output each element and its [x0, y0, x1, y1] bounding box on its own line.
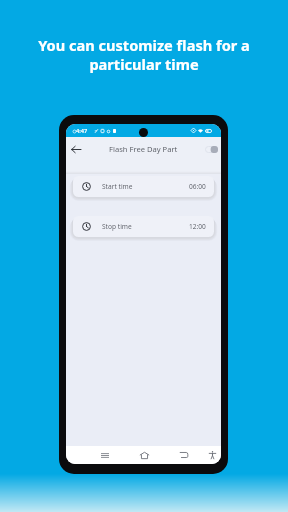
button[interactable]: Stop time: [73, 216, 214, 237]
button[interactable]: Back: [177, 448, 191, 462]
staticText: You can customize flash for a particular…: [18, 35, 270, 74]
staticText: Stop time: [102, 222, 132, 231]
staticText: Flash Free Day Part: [109, 144, 178, 154]
staticText: Start time: [102, 182, 133, 191]
staticText: 4:47: [76, 127, 88, 135]
button[interactable]: Toggle flash schedule: [200, 143, 218, 155]
button[interactable]: Start time: [73, 176, 214, 197]
staticText: 12:00: [189, 222, 206, 231]
button[interactable]: Recent apps: [98, 448, 112, 462]
staticText: 06:00: [189, 182, 206, 191]
button[interactable]: Home: [137, 448, 151, 462]
button[interactable]: Accessibility: [205, 448, 219, 462]
button[interactable]: Back: [68, 141, 84, 157]
